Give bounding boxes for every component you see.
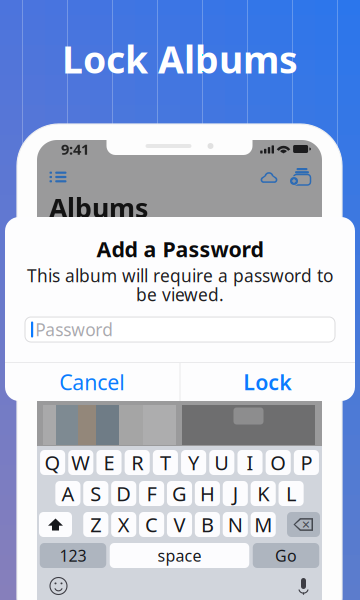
staticText: space — [157, 545, 201, 566]
button[interactable]: T — [153, 450, 178, 475]
staticText: G — [172, 480, 187, 507]
button[interactable]: U — [209, 450, 234, 475]
button[interactable]: W — [68, 450, 93, 475]
staticText: Lock Albums — [62, 34, 298, 84]
button[interactable]: space — [110, 543, 249, 568]
button[interactable]: X — [111, 512, 136, 537]
button[interactable]: Emoji — [49, 576, 68, 595]
button[interactable]: Q — [40, 450, 65, 475]
staticText: Add a Password — [96, 235, 263, 263]
staticText: × — [302, 514, 310, 534]
button[interactable]: View options — [37, 167, 66, 187]
staticText: C — [145, 511, 158, 538]
staticText: Password — [35, 318, 113, 341]
staticText: Y — [188, 449, 199, 476]
button[interactable]: Shift — [39, 512, 72, 537]
staticText: L — [286, 480, 296, 507]
staticText: Z — [90, 511, 101, 538]
button[interactable]: C — [139, 512, 164, 537]
button[interactable]: New album — [289, 168, 322, 186]
staticText: A — [61, 480, 74, 507]
staticText: H — [200, 480, 215, 507]
button[interactable]: N — [223, 512, 248, 537]
staticText: M — [254, 511, 272, 538]
staticText: K — [257, 480, 269, 507]
staticText: W — [71, 449, 90, 476]
staticText: U — [214, 449, 229, 476]
button[interactable]: iCloud — [260, 170, 278, 183]
staticText: 123 — [59, 545, 86, 566]
button[interactable]: H — [195, 481, 220, 506]
staticText: Cancel — [59, 368, 125, 396]
staticText: O — [270, 449, 286, 476]
button[interactable]: Y — [181, 450, 206, 475]
button[interactable]: D — [111, 481, 136, 506]
button[interactable]: Go — [253, 543, 319, 568]
staticText: 9:41 — [61, 139, 89, 159]
staticText: Albums — [49, 190, 148, 225]
staticText: P — [300, 449, 312, 476]
button[interactable]: V — [167, 512, 192, 537]
button[interactable]: 123 — [40, 543, 106, 568]
button[interactable]: Lock — [180, 363, 355, 401]
button[interactable]: F — [139, 481, 164, 506]
staticText: F — [147, 480, 157, 507]
button[interactable]: Cancel — [5, 363, 179, 401]
staticText: X — [118, 511, 130, 538]
staticText: N — [228, 511, 243, 538]
staticText: Go — [275, 545, 297, 566]
button[interactable]: Delete — [287, 512, 320, 537]
staticText: R — [131, 449, 143, 476]
button[interactable]: E — [96, 450, 122, 475]
staticText: D — [116, 480, 131, 507]
button[interactable]: K — [251, 481, 276, 506]
staticText: J — [233, 480, 238, 507]
button[interactable]: G — [167, 481, 192, 506]
button[interactable]: S — [83, 481, 108, 506]
button[interactable]: M — [251, 512, 276, 537]
staticText: This album will require a password to — [27, 264, 333, 287]
staticText: be viewed. — [136, 283, 224, 306]
staticText: E — [103, 449, 114, 476]
button[interactable]: I — [237, 450, 262, 475]
button[interactable]: P — [294, 450, 319, 475]
button[interactable]: R — [125, 450, 150, 475]
staticText: B — [201, 511, 214, 538]
staticText: I — [246, 449, 253, 476]
button[interactable]: J — [223, 481, 248, 506]
button[interactable]: O — [266, 450, 291, 475]
staticText: Q — [45, 449, 61, 476]
button[interactable]: Dictation — [297, 576, 310, 595]
button[interactable]: L — [279, 481, 304, 506]
button[interactable]: B — [195, 512, 220, 537]
staticText: Lock — [243, 368, 292, 396]
staticText: V — [173, 511, 185, 538]
button[interactable]: Z — [83, 512, 108, 537]
staticText: T — [160, 449, 171, 476]
button[interactable]: A — [55, 481, 80, 506]
staticText: S — [90, 480, 101, 507]
